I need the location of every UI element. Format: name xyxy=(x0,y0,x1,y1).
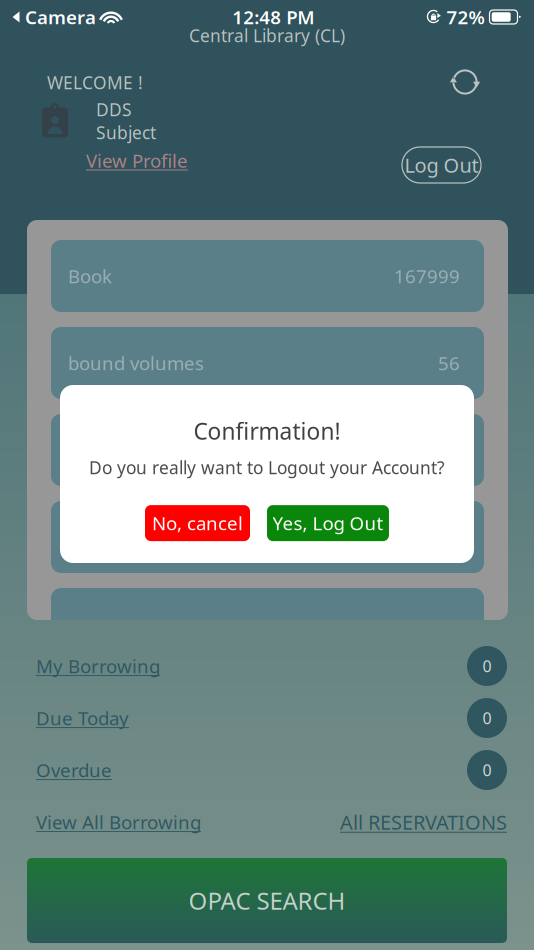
button[interactable]: OPAC SEARCH xyxy=(27,858,507,943)
staticText: Due Today xyxy=(36,706,129,730)
staticText: OPAC SEARCH xyxy=(188,885,345,916)
staticText: Central Library (CL) xyxy=(189,24,345,47)
staticText: Camera xyxy=(20,5,96,29)
staticText: Yes, Log Out xyxy=(272,511,383,535)
staticText: 12:48 PM xyxy=(232,5,314,29)
staticText: Overdue xyxy=(36,758,112,782)
button[interactable]: My Borrowing xyxy=(27,640,507,692)
button[interactable]: All RESERVATIONS xyxy=(340,809,507,835)
staticText: WELCOME ! xyxy=(47,71,143,94)
staticText: My Borrowing xyxy=(36,654,160,678)
button[interactable]: Due Today xyxy=(27,692,507,744)
button[interactable]: Yes, Log Out xyxy=(267,505,389,541)
staticText: bound volumes xyxy=(68,351,204,375)
staticText: View Profile xyxy=(86,148,188,173)
staticText: DDS xyxy=(96,98,132,121)
staticText: Log Out xyxy=(404,152,478,178)
staticText: Book xyxy=(68,264,112,288)
staticText: Subject xyxy=(96,121,156,144)
staticText: 56 xyxy=(438,351,460,375)
staticText: 0 xyxy=(482,759,491,781)
button[interactable]: Log Out xyxy=(402,147,481,183)
staticText: View All Borrowing xyxy=(36,810,201,834)
staticText: Do you really want to Logout your Accoun… xyxy=(89,456,445,479)
button[interactable]: bound volumes xyxy=(51,327,484,399)
staticText: All RESERVATIONS xyxy=(340,809,507,835)
button[interactable]: No, cancel xyxy=(145,505,250,541)
button[interactable]: Book xyxy=(51,240,484,312)
staticText: 167999 xyxy=(394,264,460,288)
button[interactable] xyxy=(51,414,484,486)
staticText: 72% xyxy=(441,5,484,29)
button[interactable]: Overdue xyxy=(27,744,507,796)
staticText: 0 xyxy=(482,655,491,677)
staticText: 0 xyxy=(482,707,491,729)
button[interactable]: View All Borrowing xyxy=(36,810,201,834)
button[interactable] xyxy=(51,588,484,660)
button[interactable] xyxy=(51,501,484,573)
button[interactable]: Refresh xyxy=(443,60,487,104)
staticText: No, cancel xyxy=(152,511,243,535)
staticText: Confirmation! xyxy=(193,416,340,446)
button[interactable]: View Profile xyxy=(80,142,194,179)
